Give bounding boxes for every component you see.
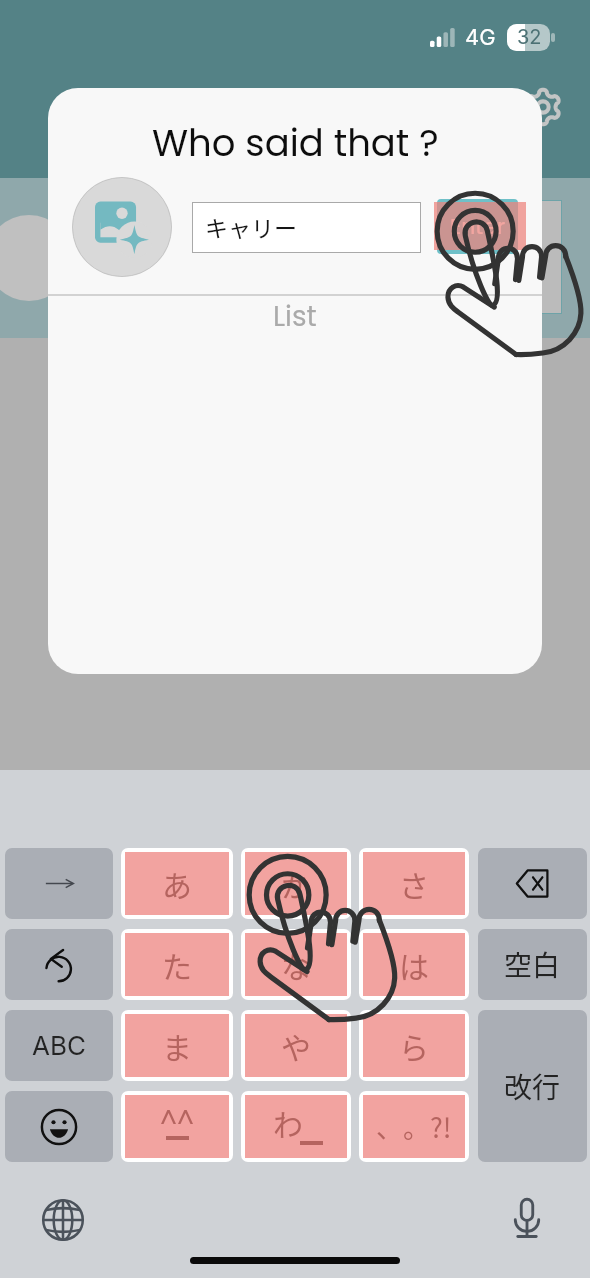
button[interactable]: 改行: [478, 1010, 587, 1162]
staticText: 改行: [504, 1066, 561, 1107]
button[interactable]: な: [241, 929, 351, 1000]
staticText: さ: [399, 862, 429, 905]
staticText: List: [273, 297, 317, 336]
button[interactable]: は: [359, 929, 469, 1000]
staticText: ABC: [32, 1030, 86, 1061]
button[interactable]: Enter: [437, 199, 518, 254]
button[interactable]: ABC: [5, 1010, 113, 1081]
button[interactable]: ま: [121, 1010, 233, 1081]
staticText: 、。?!: [376, 1107, 452, 1146]
button[interactable]: さ: [359, 848, 469, 919]
button[interactable]: Settings: [519, 83, 567, 131]
staticText: や: [281, 1024, 311, 1067]
button[interactable]: Choose image: [72, 177, 172, 277]
staticText: あ: [162, 862, 192, 905]
staticText: た: [162, 943, 192, 986]
button[interactable]: Change keyboard language: [40, 1197, 86, 1243]
button[interactable]: [5, 929, 113, 1000]
button[interactable]: キャリー: [192, 202, 421, 253]
button[interactable]: あ: [121, 848, 233, 919]
staticText: か: [281, 862, 311, 905]
staticText: 4G: [465, 24, 496, 51]
button[interactable]: [5, 848, 113, 919]
staticText: ま: [162, 1024, 192, 1067]
button[interactable]: [5, 1091, 113, 1162]
button[interactable]: 空白: [478, 929, 587, 1000]
staticText: Who said that ?: [152, 117, 439, 169]
staticText: ら: [399, 1024, 429, 1067]
staticText: 32: [517, 25, 542, 49]
button[interactable]: た: [121, 929, 233, 1000]
button[interactable]: 、。?!: [359, 1091, 469, 1162]
button[interactable]: か: [241, 848, 351, 919]
button[interactable]: ^^: [121, 1091, 233, 1162]
staticText: は: [399, 943, 429, 986]
button[interactable]: Voice dictation: [504, 1196, 550, 1242]
staticText: 空白: [504, 944, 561, 985]
staticText: キャリー: [205, 210, 297, 243]
button[interactable]: や: [241, 1010, 351, 1081]
staticText: な: [281, 943, 311, 986]
staticText: わ: [273, 1101, 303, 1144]
button[interactable]: ら: [359, 1010, 469, 1081]
staticText: Enter: [450, 211, 506, 242]
button[interactable]: [478, 848, 587, 919]
button[interactable]: わ: [241, 1091, 351, 1162]
staticText: ^^: [160, 1101, 194, 1139]
